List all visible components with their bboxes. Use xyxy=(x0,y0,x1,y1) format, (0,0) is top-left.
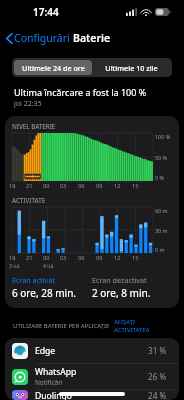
staticText: 03 xyxy=(60,254,67,262)
staticText: 31 % xyxy=(148,345,167,356)
button[interactable]: Ultimele 24 de ore xyxy=(14,60,92,75)
staticText: 3 iul. xyxy=(9,262,21,269)
staticText: 17:44 xyxy=(33,5,59,19)
button[interactable]: Edge xyxy=(5,338,179,363)
staticText: 09 xyxy=(96,182,103,190)
staticText: Ultima încărcare a fost la 100 % xyxy=(14,86,147,98)
staticText: 00 xyxy=(43,254,50,262)
button[interactable]: Duolingo xyxy=(5,390,179,400)
staticText: 12 xyxy=(114,182,121,190)
staticText: Notificări xyxy=(35,378,63,387)
staticText: Ultimele 24 de ore xyxy=(22,63,85,73)
staticText: 15 xyxy=(132,254,139,262)
button[interactable]: Ultimele 10 zile xyxy=(92,60,170,75)
staticText: 06 xyxy=(78,254,85,262)
staticText: UTILIZARE BATERIE PER APLICAȚIE xyxy=(13,322,110,330)
staticText: 21 xyxy=(26,182,33,190)
staticText: 09 xyxy=(96,254,103,262)
staticText: ACTIVITATE xyxy=(12,196,46,204)
staticText: 30 m xyxy=(155,227,168,234)
staticText: Configurări xyxy=(14,31,70,45)
staticText: 12 xyxy=(114,254,121,262)
button[interactable]: AFIȘAȚI ACTIVITATEA xyxy=(114,318,171,334)
staticText: 0 % xyxy=(155,174,164,181)
staticText: 60 m xyxy=(155,207,168,214)
staticText: Duolingo xyxy=(35,390,73,400)
staticText: 03 xyxy=(60,182,67,190)
staticText: 4 iul. xyxy=(43,262,55,269)
staticText: 15 xyxy=(132,182,139,190)
staticText: 0 m xyxy=(155,246,165,253)
staticText: 2 ore, 8 min. xyxy=(92,286,151,300)
staticText: Ecran dezactivat xyxy=(92,275,147,285)
staticText: joi 22:35 xyxy=(14,99,42,109)
staticText: Edge xyxy=(35,345,56,357)
staticText: 24 % xyxy=(148,390,167,400)
staticText: WhatsApp xyxy=(35,366,77,378)
staticText: 06 xyxy=(78,182,85,190)
staticText: Ultimele 10 zile xyxy=(105,63,158,73)
button[interactable]: Configurări xyxy=(0,28,76,48)
staticText: NIVEL BATERIE xyxy=(12,122,56,130)
staticText: 6 ore, 28 min. xyxy=(12,286,77,300)
staticText: 18 xyxy=(9,254,16,262)
staticText: Ecran activat xyxy=(12,275,55,285)
staticText: 50 % xyxy=(155,154,168,161)
staticText: 00 xyxy=(43,182,50,190)
staticText: 100 % xyxy=(155,133,171,140)
staticText: 21 xyxy=(26,254,33,262)
staticText: 26 % xyxy=(148,371,167,382)
staticText: 18 xyxy=(9,182,16,190)
staticText: AFIȘAȚI ACTIVITATEA xyxy=(114,318,171,334)
staticText: Baterie xyxy=(73,31,111,45)
button[interactable]: WhatsApp xyxy=(5,364,179,389)
